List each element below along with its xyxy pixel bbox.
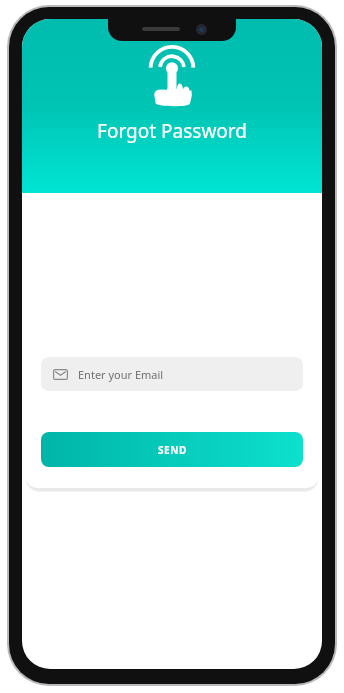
staticText: Forgot Password <box>97 118 247 144</box>
button[interactable]: Enter your Email <box>41 357 303 391</box>
other: Touch gesture <box>141 46 203 108</box>
button[interactable]: SEND <box>41 432 303 467</box>
staticText: SEND <box>158 443 187 457</box>
staticText: Enter your Email <box>78 367 164 382</box>
